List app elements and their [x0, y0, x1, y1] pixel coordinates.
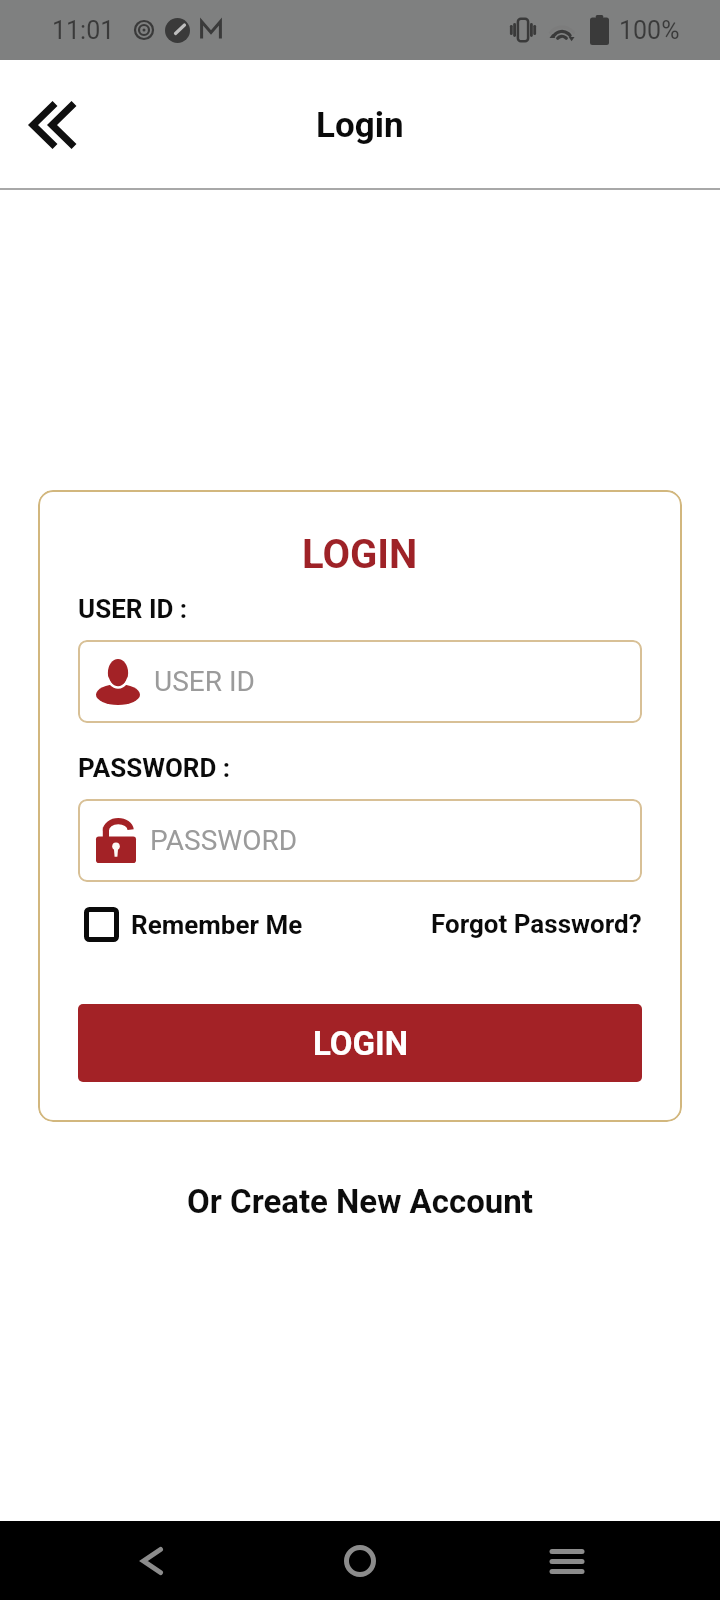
staticText: Forgot Password? — [431, 909, 642, 939]
staticText: Or Create New Account — [187, 1182, 533, 1221]
staticText: Remember Me — [131, 910, 303, 940]
button[interactable]: Back — [13, 85, 93, 165]
staticText: USER ID : — [78, 594, 188, 624]
staticText: LOGIN — [313, 1024, 408, 1063]
button[interactable]: LOGIN — [78, 1004, 642, 1082]
staticText: PASSWORD : — [78, 753, 231, 783]
button[interactable]: Or Create New Account — [177, 1176, 543, 1227]
staticText: PASSWORD — [150, 824, 298, 857]
staticText: Login — [316, 105, 404, 146]
button[interactable]: Home — [326, 1527, 394, 1595]
button[interactable]: USER ID — [78, 640, 642, 723]
button[interactable]: PASSWORD — [78, 799, 642, 882]
staticText: 11:01 — [52, 16, 115, 45]
button[interactable]: Back — [118, 1527, 186, 1595]
staticText: LOGIN — [302, 531, 418, 578]
button[interactable]: Forgot Password? — [431, 909, 642, 939]
staticText: USER ID — [154, 665, 255, 698]
staticText: 100% — [619, 16, 680, 45]
button[interactable]: Remember Me — [84, 907, 303, 942]
button[interactable]: Recent apps — [533, 1527, 601, 1595]
